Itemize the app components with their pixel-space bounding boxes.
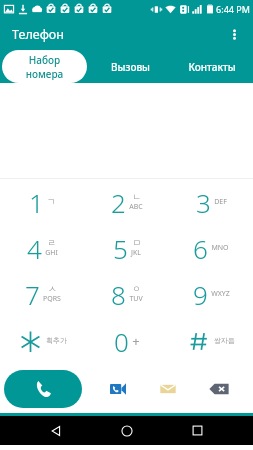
button[interactable]: 2 xyxy=(85,179,169,225)
staticText: 7 xyxy=(25,277,40,312)
button[interactable]: Call xyxy=(4,370,82,408)
button[interactable]: Video call xyxy=(102,373,134,405)
staticText: Контакты xyxy=(188,60,236,74)
staticText: Набор номера xyxy=(9,53,80,80)
staticText: 0 xyxy=(114,324,129,359)
staticText: Телефон xyxy=(12,26,64,43)
staticText: ㅅ xyxy=(48,283,57,294)
staticText: TUV xyxy=(129,294,143,304)
button[interactable]: 3 xyxy=(169,179,253,225)
button[interactable]: Контакты xyxy=(171,50,253,83)
button[interactable]: 획추가 xyxy=(0,318,85,365)
staticText: WXYZ xyxy=(211,289,230,299)
staticText: 쌍자음 xyxy=(214,336,235,345)
staticText: MNO xyxy=(211,243,229,253)
staticText: GHI xyxy=(45,248,58,258)
staticText: JKL xyxy=(131,248,141,258)
button[interactable]: 0 xyxy=(85,318,169,365)
staticText: ㄴ xyxy=(132,191,141,202)
button[interactable]: Backspace xyxy=(203,373,235,405)
staticText: ㅁ xyxy=(132,237,141,248)
staticText: Вызовы xyxy=(111,60,150,74)
staticText: 6 xyxy=(193,231,208,266)
button[interactable]: 6 xyxy=(169,225,253,271)
staticText: 2 xyxy=(111,185,126,220)
button[interactable]: 8 xyxy=(85,271,169,318)
staticText: 5 xyxy=(113,231,128,266)
button[interactable]: 9 xyxy=(169,271,253,318)
staticText: PQRS xyxy=(43,294,61,304)
button[interactable]: More options xyxy=(219,19,249,49)
staticText: + xyxy=(132,332,140,350)
button[interactable]: 5 xyxy=(85,225,169,271)
staticText: 6:44 PM xyxy=(216,3,250,15)
staticText: ㄹ xyxy=(47,237,56,248)
button[interactable]: Вызовы xyxy=(89,50,171,83)
button[interactable]: 7 xyxy=(0,271,85,318)
button[interactable]: Набор номера xyxy=(0,50,89,83)
staticText: 9 xyxy=(193,277,208,312)
staticText: DEF xyxy=(214,197,227,207)
staticText: 3 xyxy=(196,185,211,220)
button[interactable]: 쌍자음 xyxy=(169,318,253,365)
staticText: ABC xyxy=(129,202,143,212)
button[interactable]: 1 xyxy=(0,179,85,225)
staticText: ㅇ xyxy=(132,283,141,294)
staticText: 획추가 xyxy=(46,336,67,345)
button[interactable]: Message xyxy=(152,373,184,405)
staticText: ㄱ xyxy=(47,196,56,207)
button[interactable]: Home xyxy=(112,416,142,445)
button[interactable]: 4 xyxy=(0,225,85,271)
button[interactable]: Back xyxy=(41,416,71,445)
staticText: 4 xyxy=(27,231,42,266)
staticText: 1 xyxy=(29,185,44,220)
staticText: 8 xyxy=(111,277,126,312)
button[interactable]: Recent apps xyxy=(182,416,212,445)
